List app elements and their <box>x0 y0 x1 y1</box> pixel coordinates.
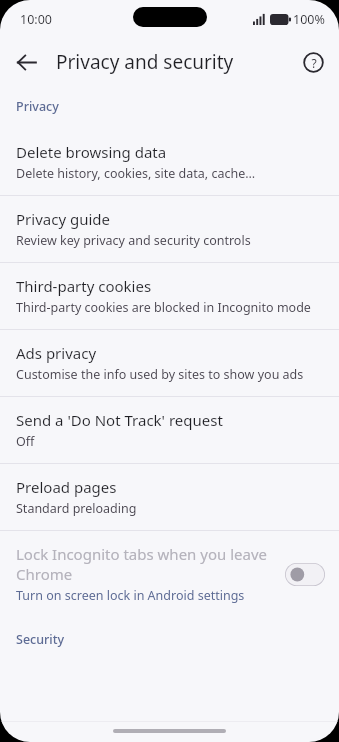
button[interactable]: Privacy guide <box>0 196 339 262</box>
staticText: Preload pages <box>16 477 117 497</box>
button[interactable]: Ads privacy <box>0 330 339 396</box>
button[interactable]: Back <box>6 42 46 82</box>
button[interactable]: Third-party cookies <box>0 263 339 329</box>
staticText: 10:00 <box>20 11 52 28</box>
staticText: Privacy guide <box>16 209 110 229</box>
button[interactable]: Delete browsing data <box>0 129 339 195</box>
staticText: Turn on screen lock in Android settings <box>16 587 245 604</box>
staticText: Customise the info used by sites to show… <box>16 366 304 383</box>
staticText: Lock Incognito tabs when you leave Chrom… <box>16 544 275 584</box>
button[interactable]: Send a 'Do Not Track' request <box>0 397 339 463</box>
staticText: Delete browsing data <box>16 142 167 162</box>
staticText: Send a 'Do Not Track' request <box>16 410 223 430</box>
button[interactable]: Lock Incognito tabs when you leave Chrom… <box>0 531 339 617</box>
staticText: Privacy and security <box>56 49 234 75</box>
staticText: 100% <box>293 11 325 28</box>
staticText: Standard preloading <box>16 500 137 517</box>
staticText: Ads privacy <box>16 343 97 363</box>
staticText: Privacy <box>16 98 339 115</box>
staticText: Delete history, cookies, site data, cach… <box>16 165 256 182</box>
button[interactable]: Preload pages <box>0 464 339 530</box>
staticText: Security <box>16 631 339 648</box>
staticText: Third-party cookies <box>16 276 152 296</box>
button[interactable]: Lock Incognito tabs toggle <box>285 563 325 586</box>
staticText: Off <box>16 433 35 450</box>
staticText: Review key privacy and security controls <box>16 232 251 249</box>
staticText: Third-party cookies are blocked in Incog… <box>16 299 311 316</box>
button[interactable]: Help <box>293 42 333 82</box>
staticText: ? <box>311 55 317 71</box>
